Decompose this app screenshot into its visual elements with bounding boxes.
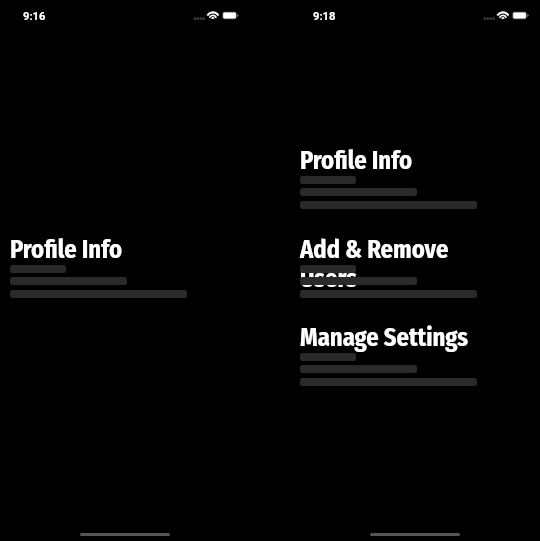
button[interactable]: Add & Remove Users — [300, 235, 477, 298]
other: Home indicator — [80, 533, 170, 536]
button[interactable]: Profile Info — [300, 146, 477, 209]
button[interactable]: Profile Info — [10, 235, 187, 298]
button[interactable]: Signal, Wi-Fi and battery status — [482, 9, 530, 23]
staticText: Manage Settings — [300, 323, 468, 352]
staticText: Add & Remove Users — [300, 235, 477, 293]
button[interactable]: Signal, Wi-Fi and battery status — [192, 9, 240, 23]
staticText: 9:16 — [23, 10, 46, 23]
staticText: 9:18 — [313, 10, 336, 23]
button[interactable]: Manage Settings — [300, 323, 477, 386]
staticText: Profile Info — [300, 146, 413, 175]
staticText: Profile Info — [10, 235, 123, 264]
other: Home indicator — [370, 533, 460, 536]
